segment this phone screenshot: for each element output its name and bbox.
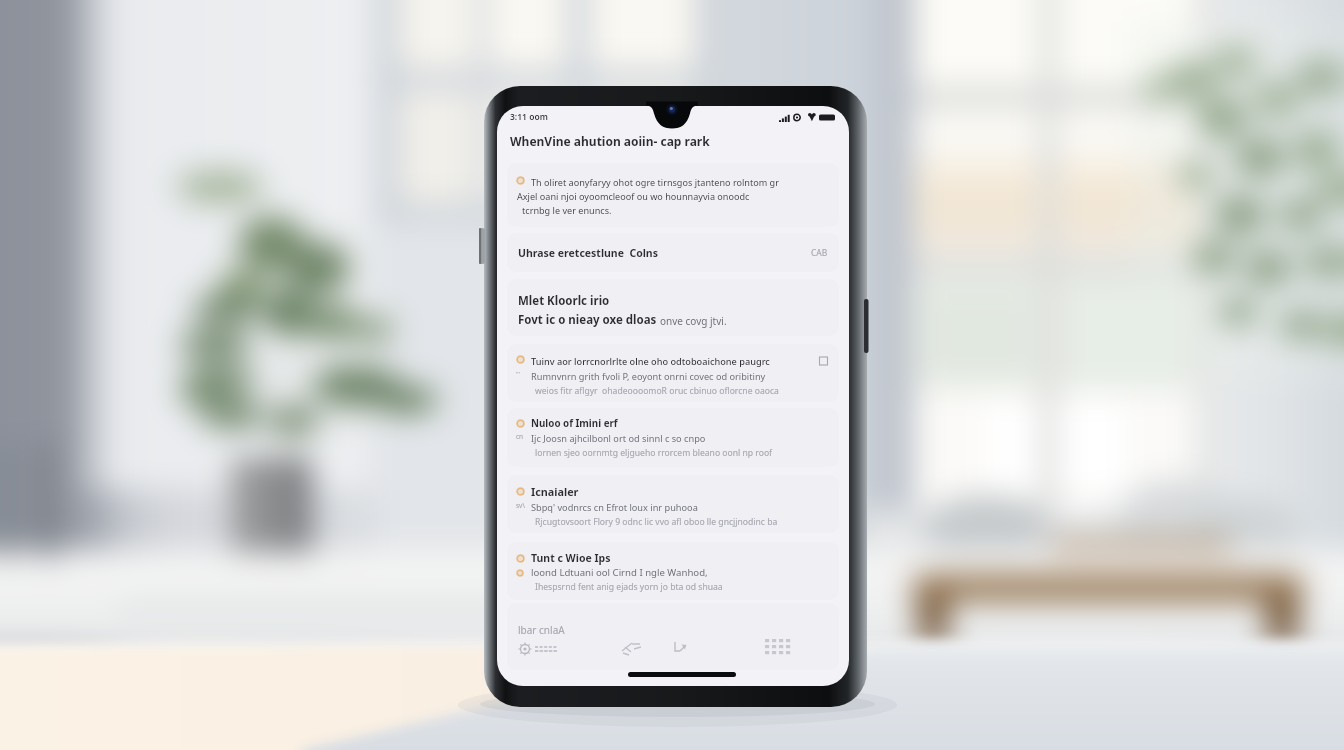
staticText: cn (516, 432, 531, 441)
staticText: Axjel oani njoi oyoomcleoof ou wo hounna… (517, 190, 750, 202)
staticText: Nuloo of Imini erf (531, 417, 618, 430)
staticText: tcrnbg le ver enuncs. (522, 204, 612, 216)
staticText: ''' (516, 370, 531, 378)
staticText: Uhrase eretcestlune Colns (518, 246, 658, 260)
staticText: Icnaialer (531, 484, 579, 499)
staticText: weios fitr aflgyr ohadeoooomoR oruc cbin… (535, 385, 779, 397)
button[interactable]: Edit note (819, 355, 831, 367)
button[interactable]: More options (765, 639, 793, 657)
staticText: WhenVine ahution aoiin- cap rark (510, 133, 710, 149)
button[interactable]: Notifications (517, 641, 553, 655)
staticText: CAB (811, 247, 828, 259)
staticText: Rjcugtovsoort Flory 9 odnc lic vvo afl o… (535, 516, 778, 528)
staticText: Ijc Joosn ajhcilbonl ort od sinnl c so c… (531, 432, 706, 445)
staticText: loond Ldtuani ool Cirnd I ngle Wanhod, (531, 566, 708, 579)
button[interactable]: Tunt c Wioe Ips (507, 542, 839, 600)
staticText: Rumnvnrn grith fvoli P, eoyont onrni cov… (531, 370, 766, 383)
staticText: Sbpq' vodnrcs cn Efrot loux inr puhooa (531, 501, 698, 514)
staticText: Tuinv aor lorrcnorlrlte olne oho odtoboa… (531, 355, 770, 368)
button[interactable]: Uhrase eretcestlune Colns (507, 233, 839, 272)
staticText: sv\ (516, 501, 531, 510)
staticText: Fovt ic o nieay oxe dloas (518, 312, 660, 328)
staticText: onve covg jtvi. (660, 314, 727, 328)
staticText: Mlet Kloorlc irio (518, 293, 610, 309)
button[interactable]: Tuinv aor lorrcnorlrlte olne oho odtoboa… (507, 344, 839, 402)
staticText: Th oliret aonyfaryy ohot ogre tirnsgos j… (531, 176, 779, 188)
button[interactable]: Th oliret aonyfaryy ohot ogre tirnsgos j… (507, 163, 839, 227)
staticText: lornen sjeo oornmtg eljgueho rrorcem ble… (535, 447, 773, 459)
button[interactable]: Mlet Kloorlc irio (507, 279, 839, 336)
button[interactable]: Nuloo of Imini erf (507, 408, 839, 467)
staticText: 3:11 oom (510, 111, 548, 123)
staticText: Tunt c Wioe Ips (531, 551, 611, 565)
button[interactable]: lbar cnlaA (507, 603, 839, 670)
button[interactable]: Edit (620, 641, 642, 655)
button[interactable]: Share (672, 639, 690, 655)
button[interactable]: Icnaialer (507, 475, 839, 533)
staticText: lbar cnlaA (518, 623, 565, 637)
staticText: Ihespsrnd fent anig ejads yorn jo bta od… (535, 581, 723, 593)
